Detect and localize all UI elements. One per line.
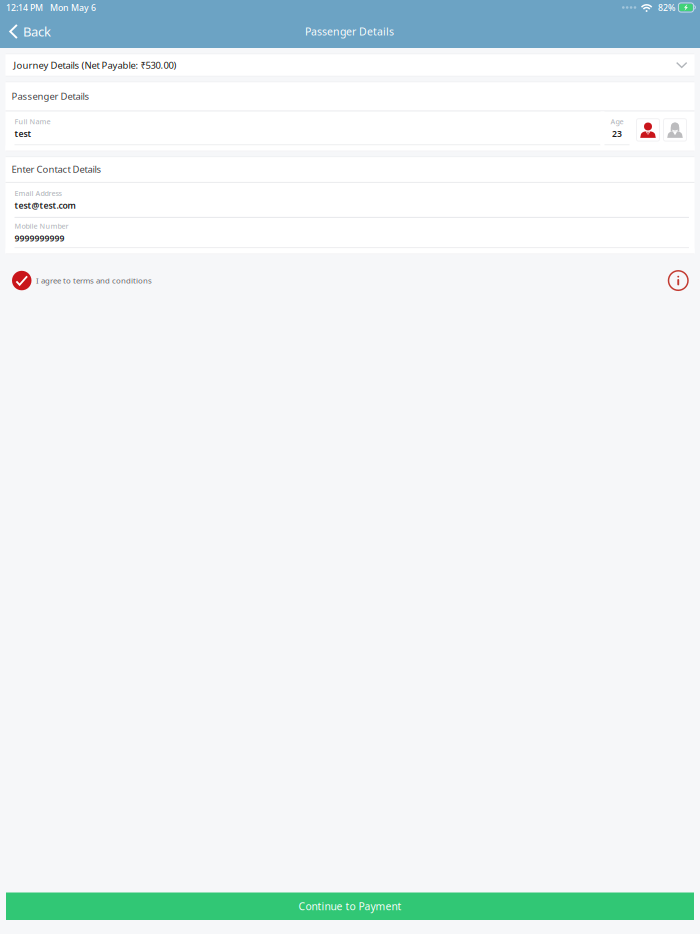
button[interactable]: I agree to terms and conditions	[12, 268, 152, 293]
staticText: 9999999999	[14, 232, 64, 244]
staticText: Full Name	[14, 117, 50, 126]
staticText: Email Address	[14, 188, 61, 198]
staticText: Enter Contact Details	[11, 163, 101, 175]
staticText: Mobile Number	[14, 221, 68, 231]
staticText: Age	[610, 117, 623, 126]
staticText: test	[14, 128, 31, 139]
button[interactable]: Back	[0, 15, 61, 48]
staticText: test@test.com	[14, 200, 75, 211]
staticText: Journey Details (Net Payable: ₹530.00)	[13, 59, 176, 71]
button[interactable]: Terms information	[668, 271, 688, 290]
staticText: I agree to terms and conditions	[36, 275, 152, 286]
staticText: Back	[23, 23, 51, 40]
staticText: 23	[612, 128, 622, 139]
button[interactable]: Female	[659, 116, 686, 141]
staticText: Continue to Payment	[298, 899, 401, 913]
staticText: Passenger Details	[305, 24, 394, 38]
staticText: 82%	[658, 2, 675, 13]
staticText: Mon May 6	[50, 2, 96, 13]
button[interactable]: Journey Details (Net Payable: ₹530.00)	[5, 53, 694, 76]
staticText: Passenger Details	[11, 90, 89, 102]
button[interactable]: Male	[629, 116, 659, 141]
button[interactable]: Continue to Payment	[6, 892, 694, 920]
staticText: 12:14 PM	[6, 2, 43, 13]
